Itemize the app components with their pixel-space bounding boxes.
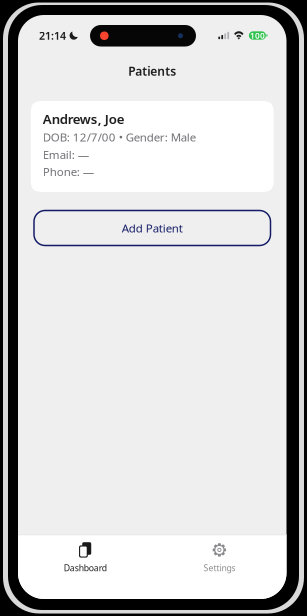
button[interactable]: Dashboard <box>18 535 152 571</box>
button[interactable]: Add Patient <box>34 210 270 245</box>
staticText: Settings <box>203 562 235 574</box>
button[interactable]: Settings <box>152 535 286 571</box>
staticText: Dashboard <box>64 562 107 574</box>
staticText: DOB: 12/7/00 • Gender: Male <box>43 129 196 145</box>
staticText: 21:14 <box>39 28 66 43</box>
staticText: Patients <box>128 63 176 79</box>
staticText: Email: — <box>43 147 89 162</box>
staticText: Phone: — <box>43 164 94 179</box>
staticText: Andrews, Joe <box>43 110 125 128</box>
staticText: 100 <box>250 30 265 41</box>
staticText: Add Patient <box>122 220 183 236</box>
